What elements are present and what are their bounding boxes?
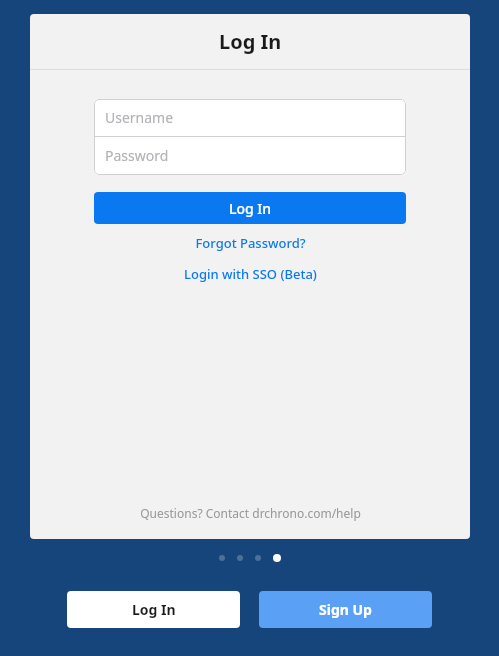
- button[interactable]: Sign Up: [259, 591, 432, 628]
- button[interactable]: Questions? Contact drchrono.com/help: [30, 501, 470, 525]
- button[interactable]: Password: [94, 137, 406, 174]
- staticText: Password: [105, 146, 169, 165]
- staticText: Sign Up: [319, 600, 372, 619]
- staticText: Log In: [219, 28, 282, 55]
- button[interactable]: Username: [94, 99, 406, 136]
- staticText: Forgot Password?: [195, 234, 306, 252]
- button[interactable]: Login with SSO (Beta): [30, 262, 470, 286]
- staticText: Login with SSO (Beta): [184, 265, 317, 283]
- button[interactable]: Log In: [67, 591, 240, 628]
- staticText: Log In: [229, 199, 272, 218]
- button[interactable]: Log In: [94, 192, 406, 224]
- staticText: Username: [105, 108, 174, 127]
- button[interactable]: Forgot Password?: [30, 231, 470, 255]
- staticText: Questions? Contact drchrono.com/help: [140, 505, 361, 521]
- staticText: Log In: [132, 600, 176, 619]
